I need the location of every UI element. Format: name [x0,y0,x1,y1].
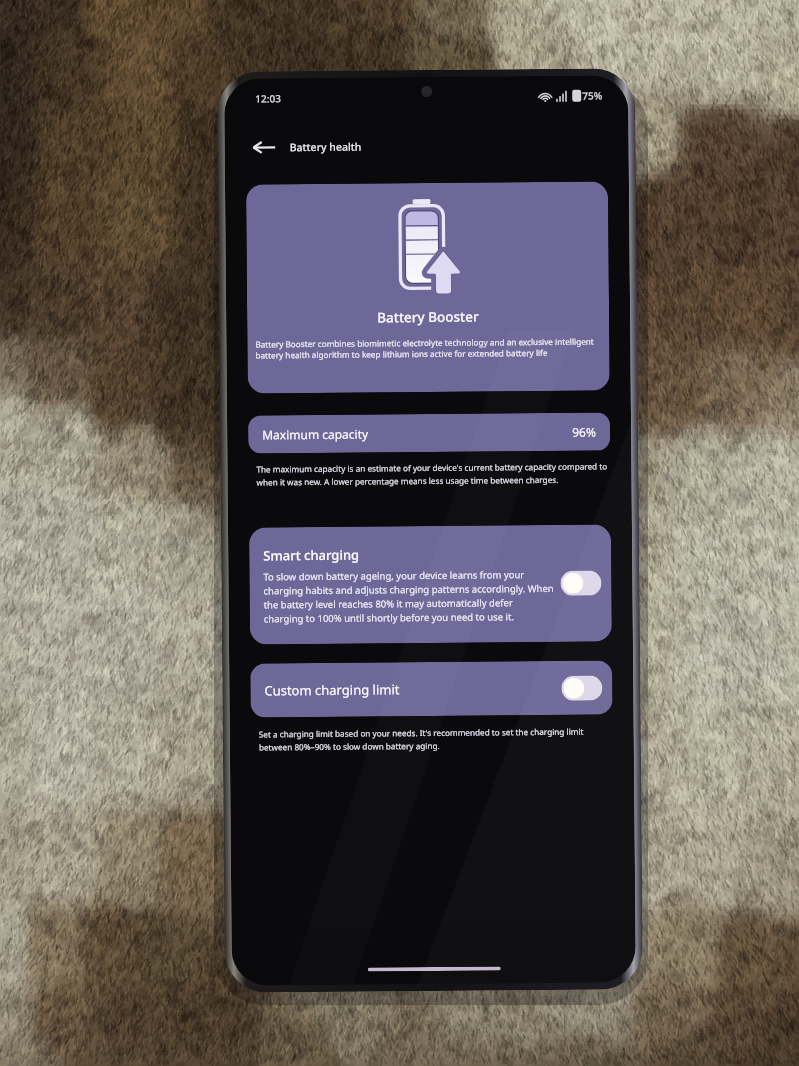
button[interactable]: Custom charging limit [250,660,613,718]
staticText: Battery Booster [377,308,479,326]
staticText: Set a charging limit based on your needs… [259,725,614,753]
staticText: Maximum capacity [262,425,368,442]
staticText: Battery Booster combines biomimetic elec… [255,335,597,361]
staticText: Custom charging limit [264,680,400,699]
staticText: 75% [582,88,602,103]
staticText: Smart charging [263,546,359,564]
staticText: Battery health [290,140,362,154]
button[interactable]: Smart charging [249,524,612,645]
button[interactable]: Maximum capacity [248,412,610,454]
button[interactable]: Battery Booster [246,181,610,394]
staticText: The maximum capacity is an estimate of y… [256,460,612,488]
button[interactable]: Toggle off [560,570,602,596]
staticText: 96% [572,423,596,440]
staticText: To slow down battery ageing, your device… [263,568,555,625]
staticText: 12:03 [255,91,281,105]
button[interactable]: Back [246,130,281,165]
button[interactable]: Toggle off [561,675,602,701]
